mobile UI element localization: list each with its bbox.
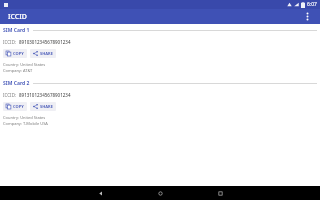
staticText: 89103012345678901234 [19,39,71,45]
staticText: COPY [13,51,24,56]
button[interactable]: SHARE [30,49,56,58]
staticText: Country: United States [3,62,46,67]
button[interactable]: SHARE [30,102,56,111]
button[interactable]: Home [130,186,190,200]
staticText: COPY [13,104,24,109]
button[interactable]: COPY [3,102,27,111]
button[interactable]: Recent apps [190,186,250,200]
staticText: SHARE [40,104,53,109]
button[interactable]: More options [294,9,320,24]
staticText: Company: AT&T [3,68,33,73]
staticText: ICCID [8,12,27,22]
staticText: SIM Card 1 [3,27,30,34]
staticText: ICCID: [3,92,17,98]
button[interactable]: COPY [3,49,27,58]
staticText: SHARE [40,51,53,56]
staticText: Company: T-Mobile USA [3,121,48,126]
staticText: ICCID: [3,39,17,45]
button[interactable]: Back [70,186,130,200]
staticText: 6:07 [307,1,317,8]
staticText: Country: United States [3,115,46,120]
staticText: 89131012345678901234 [19,92,71,98]
staticText: SIM Card 2 [3,80,30,87]
